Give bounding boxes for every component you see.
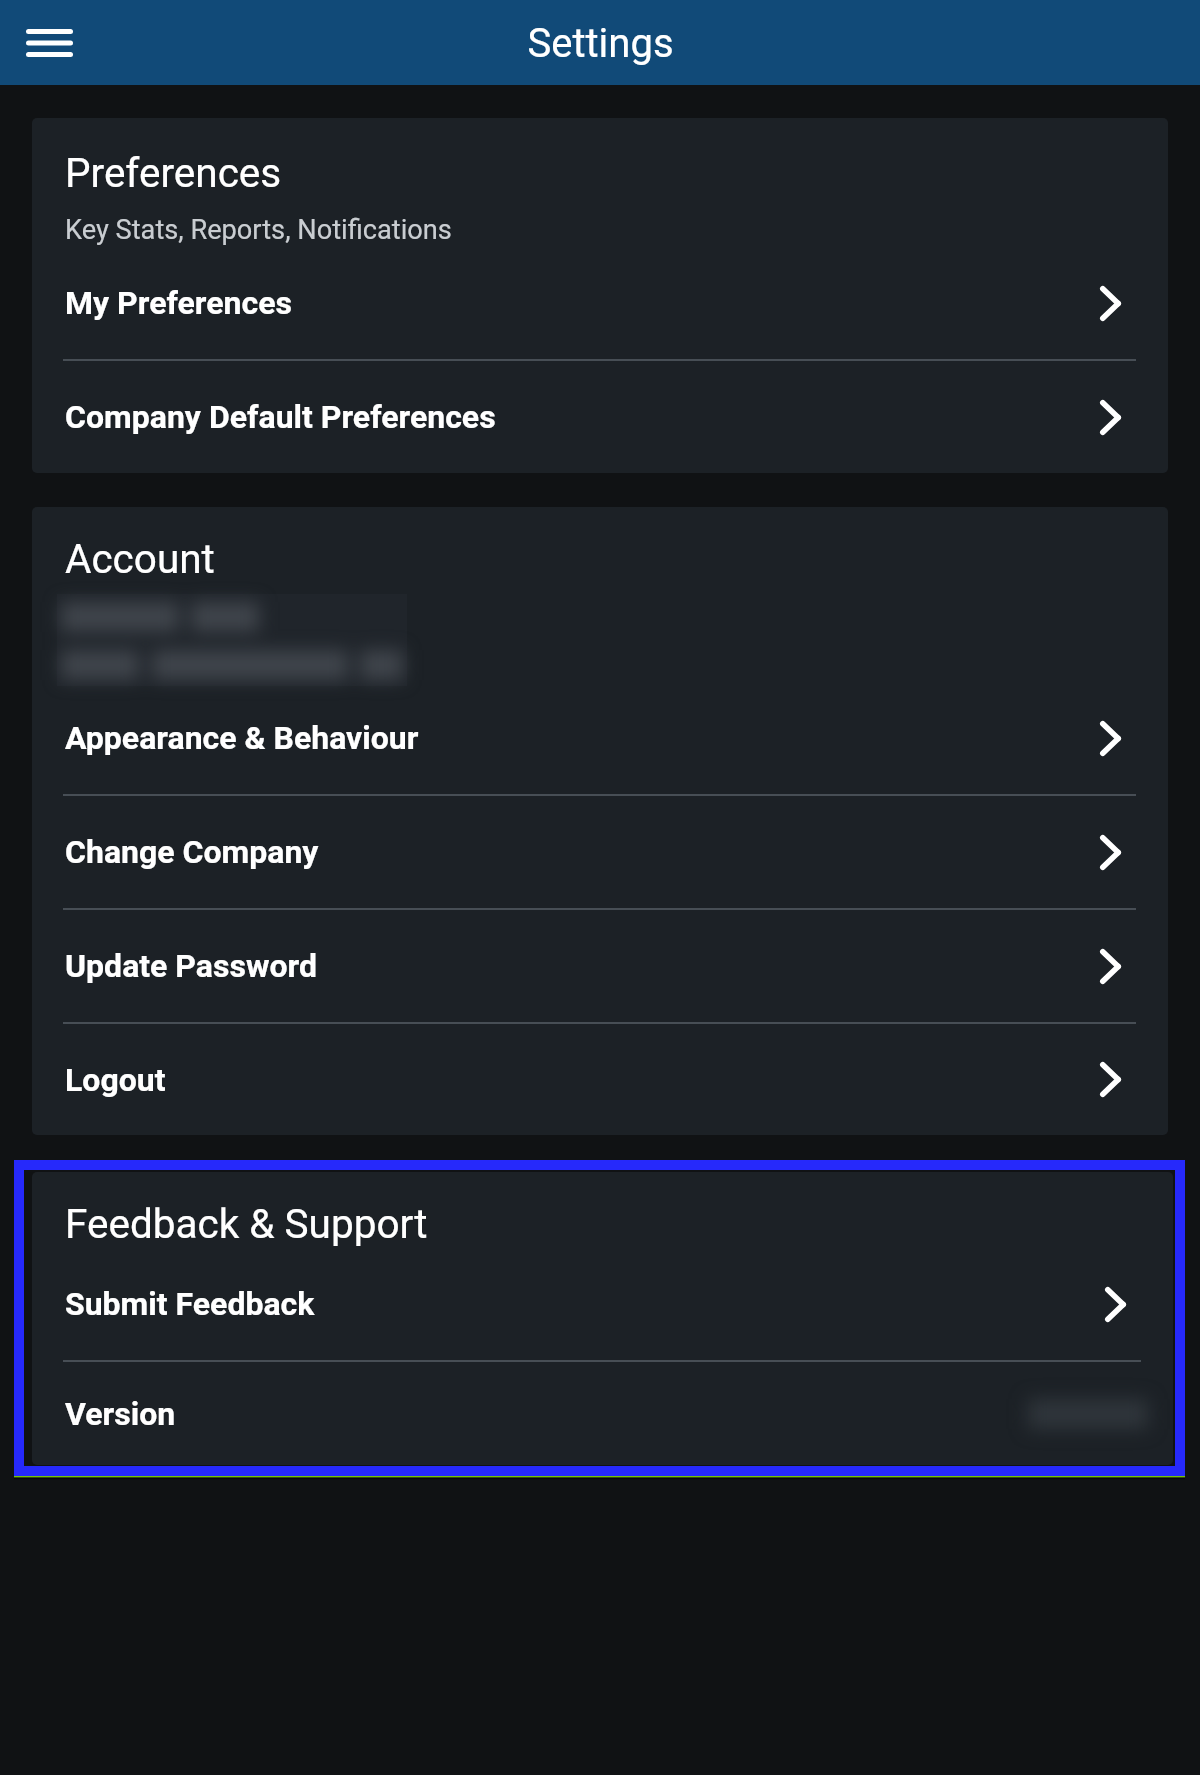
button[interactable]: My Preferences [32, 247, 1168, 359]
staticText: Update Password [65, 947, 317, 985]
button[interactable]: Submit Feedback [32, 1248, 1173, 1360]
staticText: Key Stats, Reports, Notifications [65, 214, 452, 246]
staticText: Submit Feedback [65, 1285, 315, 1323]
button[interactable]: Change Company [32, 796, 1168, 908]
staticText: Version [65, 1395, 176, 1433]
staticText: Company Default Preferences [65, 398, 496, 436]
staticText: Logout [65, 1061, 166, 1099]
button[interactable]: Appearance & Behaviour [32, 682, 1168, 794]
button[interactable]: Open navigation menu [13, 7, 85, 79]
staticText: Preferences [65, 149, 282, 196]
button[interactable]: Update Password [32, 910, 1168, 1022]
staticText: Settings [527, 20, 674, 67]
button[interactable]: Logout [32, 1024, 1168, 1135]
button[interactable]: Company Default Preferences [32, 361, 1168, 473]
staticText: Appearance & Behaviour [65, 719, 419, 757]
staticText: Change Company [65, 833, 319, 871]
staticText: Account [65, 535, 215, 582]
staticText: My Preferences [65, 284, 292, 322]
staticText: Feedback & Support [65, 1200, 428, 1247]
